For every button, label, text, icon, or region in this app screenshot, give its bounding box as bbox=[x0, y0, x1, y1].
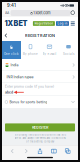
staticText: Log in bbox=[57, 22, 67, 25]
button[interactable]: Socials bbox=[59, 41, 78, 59]
button[interactable]: India bbox=[2, 59, 78, 71]
staticText: are 18 and accept the Terms and Conditio… bbox=[14, 137, 65, 140]
staticText: Bonus for sports betting bbox=[9, 100, 47, 104]
button[interactable]: Registration bbox=[33, 21, 55, 26]
staticText: INR Indian rupee bbox=[6, 75, 33, 79]
button[interactable]: REGISTER bbox=[5, 123, 75, 131]
staticText: By e-mail bbox=[42, 52, 56, 56]
button[interactable]: By phone bbox=[21, 41, 40, 59]
button[interactable]: Forward bbox=[22, 148, 31, 155]
staticText: 9:41 bbox=[7, 3, 16, 8]
staticText: Enter promo code (if you have) bbox=[5, 85, 54, 89]
button[interactable]: Tabs bbox=[63, 148, 72, 155]
staticText: 1XBET bbox=[4, 19, 27, 28]
staticText: AA bbox=[5, 11, 9, 15]
button[interactable]: Address bbox=[10, 10, 70, 16]
button[interactable]: INR Indian rupee bbox=[2, 71, 78, 83]
button[interactable]: Log in bbox=[56, 21, 69, 26]
button[interactable]: Bonus for sports betting bbox=[2, 96, 78, 108]
staticText: abcd bbox=[5, 90, 13, 94]
button[interactable]: Menu bbox=[69, 20, 76, 26]
button[interactable]: Page settings bbox=[3, 10, 10, 16]
staticText: Registration bbox=[34, 22, 53, 25]
button[interactable]: Reload bbox=[70, 10, 76, 15]
staticText: India bbox=[10, 63, 18, 67]
button[interactable]: Back bbox=[2, 30, 10, 40]
staticText: REGISTER bbox=[32, 125, 48, 130]
staticText: REGISTRATION bbox=[25, 33, 55, 38]
button[interactable]: Bookmarks bbox=[49, 148, 58, 155]
button[interactable]: Share bbox=[35, 148, 44, 155]
staticText: Socials bbox=[63, 52, 74, 56]
staticText: By clicking the button you confirm that … bbox=[14, 133, 65, 136]
staticText: One click bbox=[4, 52, 19, 56]
staticText: By phone bbox=[23, 52, 38, 56]
staticText: 1xbet.com bbox=[33, 11, 50, 15]
button[interactable]: Back bbox=[8, 148, 17, 155]
button[interactable]: By e-mail bbox=[40, 41, 59, 59]
button[interactable]: One click bbox=[2, 41, 21, 59]
staticText: of the Betting company bbox=[26, 140, 54, 143]
